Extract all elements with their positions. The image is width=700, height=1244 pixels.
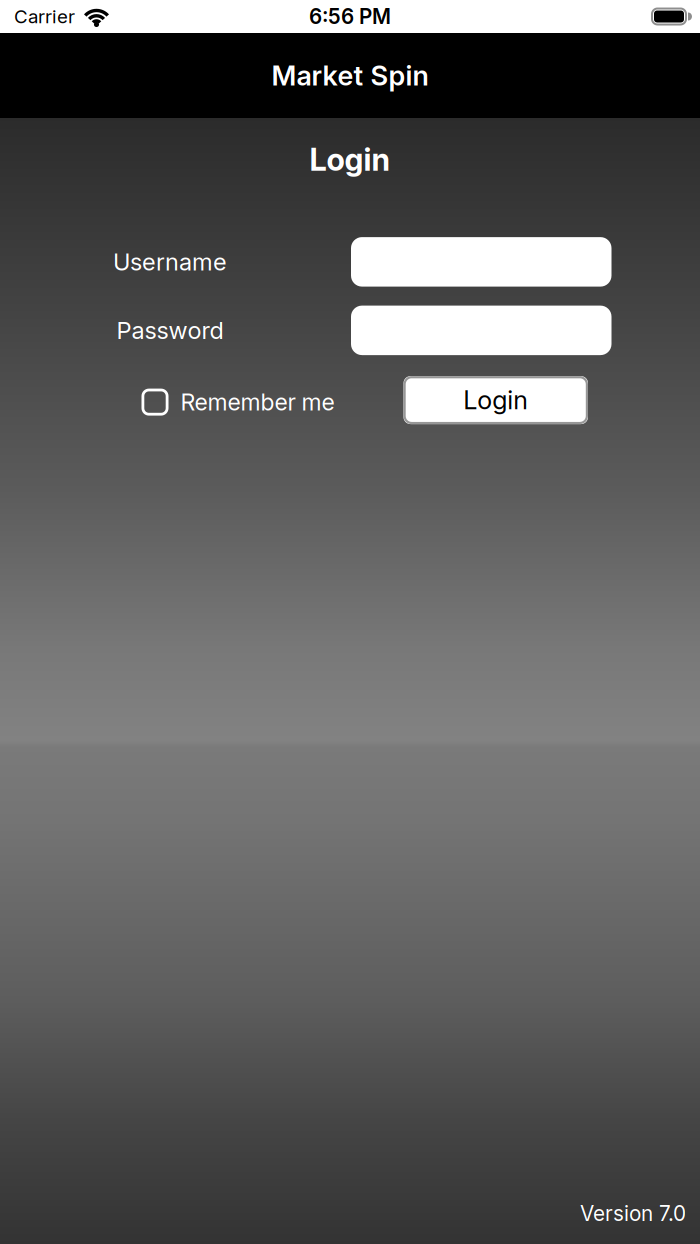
staticText: Carrier [14, 5, 75, 28]
staticText: Login [309, 141, 390, 178]
staticText: Market Spin [271, 59, 428, 92]
button[interactable]: Username [351, 237, 611, 287]
staticText: Login [463, 385, 528, 415]
staticText: 6:56 PM [309, 4, 391, 29]
staticText: Remember me [180, 388, 334, 416]
staticText: Username [113, 247, 227, 276]
button[interactable]: Password [351, 306, 611, 355]
staticText: Password [116, 316, 223, 345]
button[interactable]: Remember me [141, 388, 334, 416]
button[interactable]: Login [403, 376, 588, 424]
staticText: Version 7.0 [580, 1201, 686, 1226]
